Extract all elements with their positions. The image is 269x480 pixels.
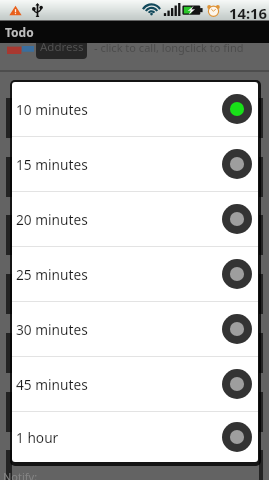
other: Warning xyxy=(9,4,22,17)
other: USB connected xyxy=(32,3,43,17)
staticText: 1 hour xyxy=(16,428,59,447)
staticText: 15 minutes xyxy=(16,155,88,174)
staticText: 20 minutes xyxy=(16,210,88,229)
button[interactable]: 30 minutes xyxy=(12,302,258,356)
staticText: - click to call, longclick to find xyxy=(94,40,244,55)
other: Signal strength xyxy=(163,3,180,16)
staticText: Address xyxy=(40,39,84,55)
button[interactable]: 10 minutes xyxy=(12,82,258,136)
button[interactable]: 20 minutes xyxy=(12,192,258,246)
other: Battery charging xyxy=(182,3,203,17)
other: Contact photo xyxy=(7,46,34,54)
staticText: 14:16 xyxy=(229,3,268,23)
staticText: Notify: xyxy=(3,469,38,480)
button[interactable]: 1 hour xyxy=(12,412,258,462)
other: Alarm set xyxy=(206,2,221,18)
button[interactable]: 25 minutes xyxy=(12,247,258,301)
staticText: 30 minutes xyxy=(16,320,88,339)
staticText: 25 minutes xyxy=(16,265,88,284)
button[interactable]: 45 minutes xyxy=(12,357,258,411)
button[interactable]: 15 minutes xyxy=(12,137,258,191)
other: Wi-Fi xyxy=(142,2,161,18)
button[interactable]: Address xyxy=(36,35,87,59)
staticText: 10 minutes xyxy=(16,100,88,119)
staticText: Todo xyxy=(5,24,34,40)
staticText: 45 minutes xyxy=(16,375,88,394)
